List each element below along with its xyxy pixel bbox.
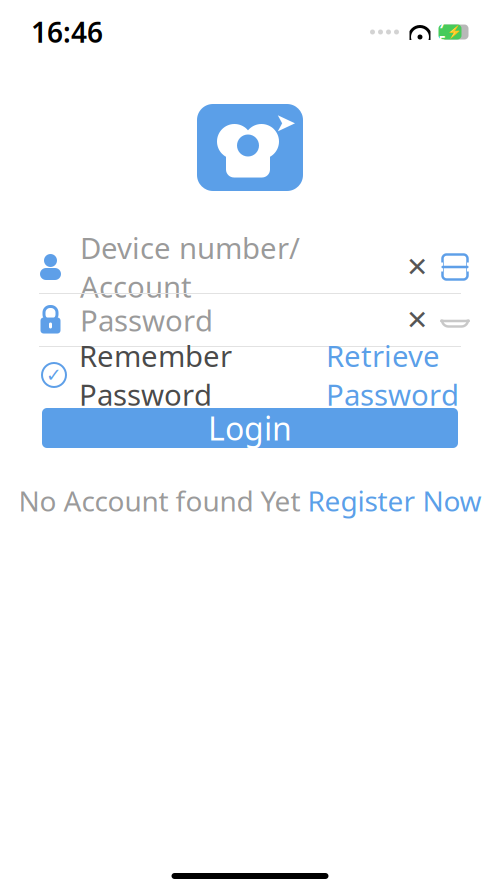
staticText: Login (208, 407, 292, 449)
staticText: Device number/Account (80, 228, 300, 306)
staticText: ⚡ (446, 25, 461, 39)
button[interactable]: Clear account (402, 252, 432, 282)
staticText: No Account found Yet (18, 482, 307, 519)
button[interactable]: Scan code (440, 252, 470, 282)
staticText: 16:46 (31, 13, 103, 51)
button[interactable]: Register Now (307, 482, 481, 519)
staticText: ➤ (275, 108, 296, 137)
button[interactable]: Login (42, 408, 458, 448)
staticText: Retrieve Password (326, 336, 459, 414)
staticText: Register Now (307, 482, 481, 519)
staticText: Remember Password (79, 336, 232, 414)
staticText: ✕ (406, 252, 428, 282)
staticText: 75 (438, 14, 446, 50)
button[interactable]: Clear password (402, 305, 432, 335)
button[interactable]: ✓ (41, 328, 232, 422)
staticText: Password (80, 300, 213, 339)
button[interactable]: Show password (440, 305, 470, 335)
staticText: ✓ (46, 364, 62, 386)
staticText: ✕ (406, 305, 428, 335)
button[interactable]: Retrieve Password (326, 328, 459, 422)
